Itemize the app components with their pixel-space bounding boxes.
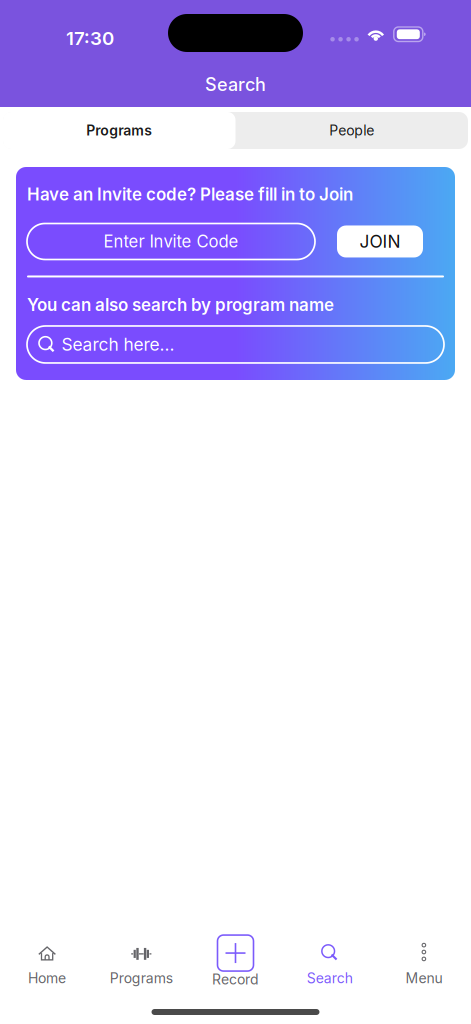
button[interactable]: Search xyxy=(283,936,377,986)
button[interactable]: Enter Invite Code xyxy=(27,223,315,259)
button[interactable]: JOIN xyxy=(337,225,423,257)
button[interactable]: Programs xyxy=(94,936,188,986)
staticText: 17:30 xyxy=(66,27,114,50)
staticText: Search here... xyxy=(62,334,175,355)
staticText: JOIN xyxy=(359,231,400,252)
staticText: Search xyxy=(307,970,353,986)
staticText: Home xyxy=(28,970,66,986)
button[interactable]: Record xyxy=(188,935,283,988)
staticText: Enter Invite Code xyxy=(103,231,238,252)
button[interactable]: Menu xyxy=(377,936,471,986)
staticText: People xyxy=(329,122,374,139)
staticText: Programs xyxy=(110,970,173,986)
staticText: Search xyxy=(205,74,266,95)
staticText: Record xyxy=(212,971,259,988)
button[interactable]: People xyxy=(235,112,468,149)
staticText: Menu xyxy=(405,970,442,986)
button[interactable]: Programs xyxy=(3,112,235,149)
button[interactable]: Home xyxy=(0,936,94,986)
staticText: Programs xyxy=(86,122,152,139)
staticText: Have an Invite code? Please fill in to J… xyxy=(27,184,353,204)
staticText: You can also search by program name xyxy=(27,294,334,315)
